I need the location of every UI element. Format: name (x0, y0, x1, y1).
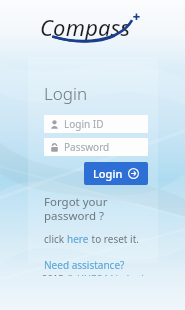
staticText: Password (64, 140, 110, 154)
staticText: 2015 © (42, 272, 77, 276)
staticText: here (67, 232, 89, 246)
button[interactable]: Password (44, 138, 148, 156)
staticText: Forgot your password ? (44, 194, 108, 223)
button[interactable]: click (44, 232, 139, 246)
button[interactable]: Login ID (44, 115, 148, 133)
staticText: Login ID (64, 117, 104, 131)
staticText: Login (44, 82, 88, 105)
staticText: Compass (40, 12, 131, 42)
staticText: click (44, 232, 67, 246)
staticText: Need assistance? (44, 258, 125, 272)
button[interactable]: Need assistance? (44, 258, 125, 272)
button[interactable]: Login (84, 162, 148, 185)
staticText: to reset it. (89, 232, 139, 246)
staticText: Login (93, 166, 123, 181)
staticText: HUB24 Limited (77, 272, 144, 276)
